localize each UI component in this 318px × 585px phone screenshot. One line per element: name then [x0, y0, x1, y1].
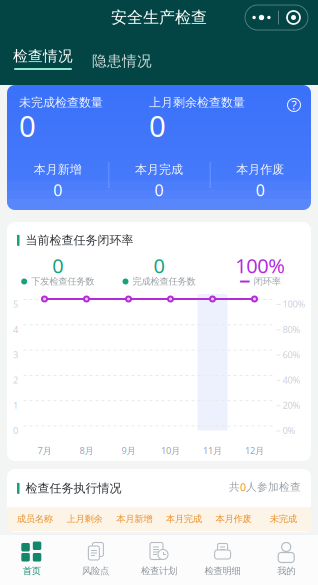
- staticText: 闭环率: [254, 276, 281, 287]
- staticText: ?: [291, 97, 296, 113]
- staticText: 100%: [282, 298, 305, 310]
- staticText: 本月完成: [166, 513, 202, 525]
- staticText: 80%: [282, 323, 300, 335]
- staticText: 0: [256, 179, 265, 201]
- staticText: 未完成检查数量: [19, 95, 103, 110]
- staticText: 8月: [79, 444, 93, 457]
- staticText: 10月: [161, 444, 180, 457]
- staticText: 成员名称: [17, 513, 53, 525]
- staticText: 4: [13, 323, 18, 335]
- staticText: 9月: [121, 444, 135, 457]
- staticText: 共: [229, 480, 240, 493]
- staticText: 我的: [277, 565, 295, 577]
- staticText: 首页: [23, 565, 41, 577]
- staticText: 0: [153, 252, 164, 279]
- staticText: 本月作废: [236, 162, 284, 177]
- staticText: 检查明细: [205, 565, 241, 577]
- staticText: 下发检查任务数: [31, 276, 94, 287]
- staticText: 风险点: [82, 565, 109, 577]
- button[interactable]: 检查明细: [191, 534, 254, 585]
- staticText: 本月新增: [34, 162, 82, 177]
- staticText: 60%: [282, 348, 300, 361]
- staticText: 0: [19, 106, 36, 145]
- staticText: 本月作废: [215, 513, 251, 525]
- staticText: 0: [53, 179, 62, 201]
- staticText: 本月完成: [135, 162, 183, 177]
- button[interactable]: 我的: [254, 534, 318, 585]
- staticText: 5: [13, 298, 18, 310]
- staticText: 上月剩余检查数量: [149, 95, 245, 110]
- staticText: 上月剩余: [66, 513, 102, 525]
- button[interactable]: 检查情况: [14, 47, 72, 70]
- staticText: 40%: [282, 374, 300, 386]
- staticText: 7月: [37, 444, 51, 457]
- staticText: 2: [13, 374, 18, 386]
- staticText: 检查任务执行情况: [25, 481, 121, 496]
- staticText: 当前检查任务闭环率: [25, 233, 133, 248]
- button[interactable]: 首页: [0, 534, 64, 585]
- staticText: 0: [13, 424, 18, 437]
- staticText: 3: [13, 348, 18, 361]
- staticText: 人参加检查: [246, 480, 301, 493]
- button[interactable]: More options: [245, 5, 308, 30]
- staticText: 0: [154, 179, 163, 201]
- staticText: 0: [149, 106, 166, 145]
- button[interactable]: Help: [284, 95, 304, 115]
- button[interactable]: 隐患情况: [72, 52, 158, 70]
- staticText: 检查情况: [13, 47, 73, 65]
- staticText: 隐患情况: [92, 52, 152, 70]
- staticText: 12月: [245, 444, 264, 457]
- button[interactable]: 风险点: [64, 534, 127, 585]
- staticText: 完成检查任务数: [132, 276, 195, 287]
- staticText: 20%: [282, 399, 300, 411]
- staticText: 100%: [235, 252, 285, 279]
- staticText: 安全生产检查: [111, 8, 207, 27]
- staticText: 本月新增: [116, 513, 152, 525]
- staticText: 11月: [203, 444, 222, 457]
- staticText: 检查计划: [141, 565, 177, 577]
- staticText: 未完成: [270, 513, 297, 525]
- staticText: 1: [13, 399, 18, 411]
- staticText: 0: [52, 252, 63, 279]
- staticText: 0: [240, 480, 246, 494]
- button[interactable]: 检查计划: [127, 534, 191, 585]
- staticText: 0%: [282, 424, 295, 437]
